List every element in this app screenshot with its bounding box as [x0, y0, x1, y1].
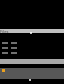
staticText: Files	[0, 29, 9, 33]
button[interactable]: Files	[0, 29, 64, 33]
button[interactable]	[0, 68, 64, 79]
